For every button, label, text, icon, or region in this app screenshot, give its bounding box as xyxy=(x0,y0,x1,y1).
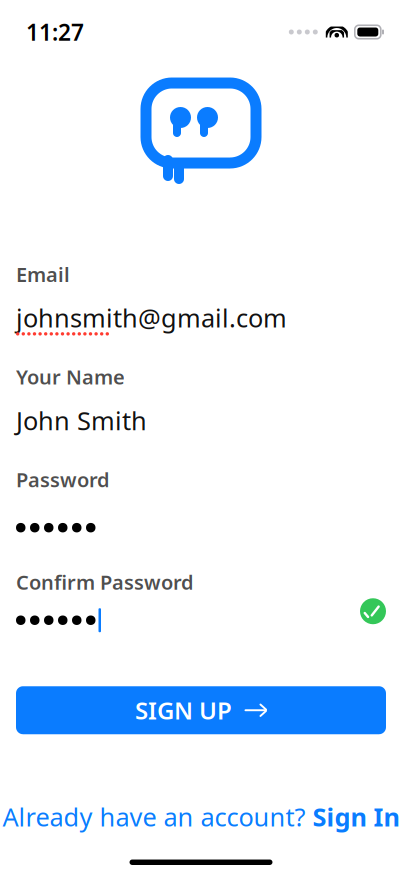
staticText: Your Name xyxy=(16,364,125,390)
staticText: Sign In xyxy=(312,800,399,833)
staticText: John Smith xyxy=(16,403,147,437)
staticText: Already have an account? xyxy=(2,800,312,833)
button[interactable]: Your Name xyxy=(16,364,386,437)
staticText: johnsmith@gmail.com xyxy=(16,301,287,334)
staticText: Confirm Password xyxy=(16,569,194,595)
button[interactable]: Password xyxy=(16,466,386,540)
staticText: SIGN UP xyxy=(135,694,232,726)
button[interactable]: Confirm Password xyxy=(16,569,386,642)
button[interactable]: Email xyxy=(16,261,386,335)
staticText: Password xyxy=(16,466,110,493)
staticText: Email xyxy=(16,261,70,288)
staticText: 11:27 xyxy=(26,17,84,47)
button[interactable]: Already have an account? xyxy=(0,792,402,841)
button[interactable]: SIGN UP xyxy=(16,686,386,734)
